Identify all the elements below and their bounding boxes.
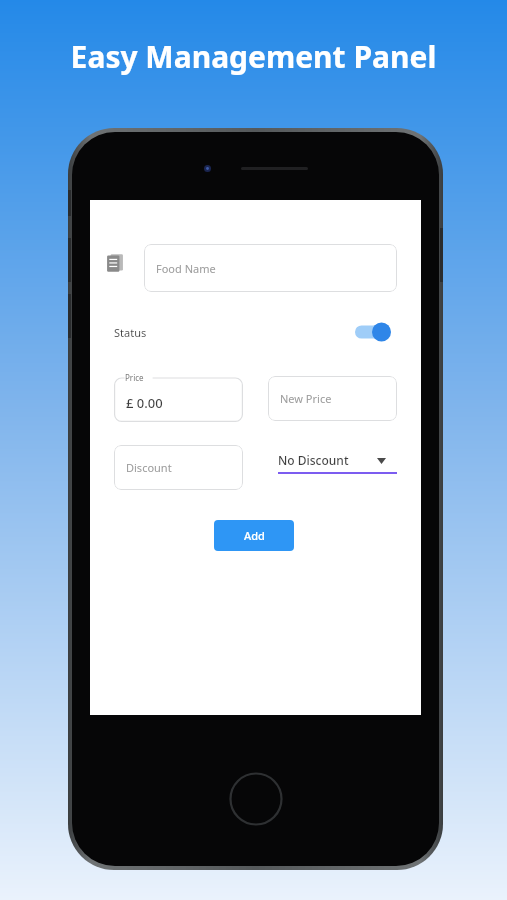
staticText: Price	[125, 372, 144, 383]
button[interactable]: Status toggle	[348, 318, 396, 346]
button[interactable]: New Price	[268, 376, 397, 421]
staticText: £ 0.00	[126, 394, 163, 412]
other: Expand	[377, 458, 386, 464]
button[interactable]: Price	[114, 372, 243, 422]
button[interactable]: Food Name	[144, 244, 397, 292]
staticText: Status	[114, 325, 147, 340]
button[interactable]: Discount	[114, 445, 243, 490]
staticText: Discount	[126, 460, 172, 475]
staticText: New Price	[280, 391, 332, 406]
button[interactable]: No Discount	[278, 448, 398, 486]
staticText: No Discount	[278, 452, 349, 468]
button[interactable]: Add	[214, 520, 294, 551]
staticText: Food Name	[156, 261, 216, 276]
staticText: Add	[244, 528, 265, 543]
other: Home	[229, 772, 283, 826]
other: Food	[104, 252, 126, 274]
staticText: Easy Management Panel	[0, 36, 507, 77]
